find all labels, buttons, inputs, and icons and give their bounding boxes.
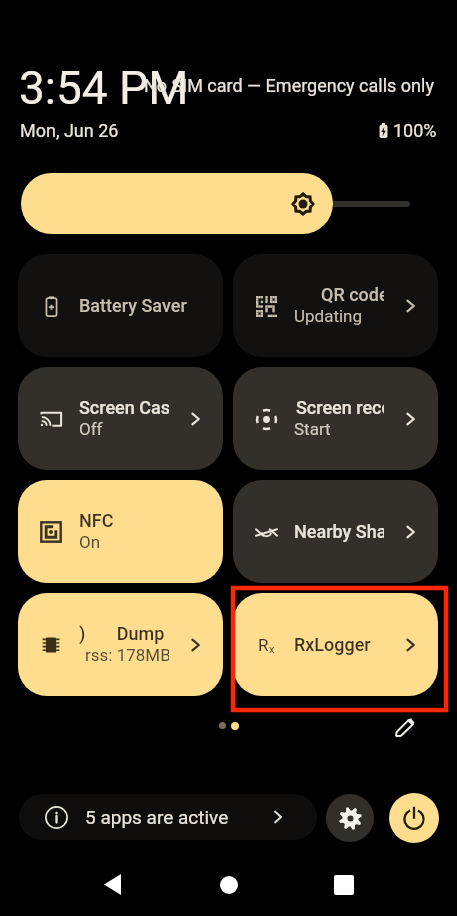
staticText: Start	[294, 419, 331, 439]
button[interactable]: QR code scanner	[233, 254, 438, 357]
button[interactable]: Power	[389, 793, 439, 843]
staticText: R	[258, 635, 269, 655]
button[interactable]: Screen Cast	[18, 367, 223, 470]
staticText: On	[79, 532, 101, 552]
staticText: NFC	[79, 510, 114, 531]
staticText: 3:54 PM	[19, 61, 189, 115]
button[interactable]: NFC	[18, 480, 223, 583]
staticText: No SIM card — Emergency calls only	[144, 75, 434, 96]
button[interactable]: Brightness	[21, 173, 333, 234]
staticText: Updating	[294, 306, 363, 326]
button[interactable]: Settings	[326, 794, 374, 842]
staticText: RxLogger	[294, 634, 371, 655]
staticText: Mon, Jun 26	[20, 120, 119, 141]
staticText: x	[269, 643, 275, 656]
button[interactable]: R	[233, 593, 438, 696]
staticText: Off	[79, 419, 103, 439]
staticText: Screen Cast	[79, 397, 169, 418]
staticText: Screen record	[296, 397, 384, 418]
button[interactable]: Recent apps	[325, 866, 362, 903]
button[interactable]: Screen record	[233, 367, 438, 470]
staticText: ) Dump :	[79, 623, 169, 644]
staticText: Nearby Share	[294, 521, 384, 542]
staticText: Battery Saver	[79, 295, 187, 316]
button[interactable]: ) Dump :	[18, 593, 223, 696]
button[interactable]: Home	[210, 866, 247, 903]
button[interactable]: Battery Saver	[18, 254, 223, 357]
button[interactable]: Edit tiles	[391, 713, 418, 740]
staticText: rss: 178MB	[85, 645, 169, 665]
staticText: 100%	[393, 120, 437, 141]
button[interactable]: 5 apps are active	[19, 794, 317, 840]
button[interactable]: Back	[94, 866, 131, 903]
staticText: 5 apps are active	[85, 806, 229, 828]
staticText: QR code scanner	[321, 284, 384, 305]
button[interactable]: Nearby Share	[233, 480, 438, 583]
